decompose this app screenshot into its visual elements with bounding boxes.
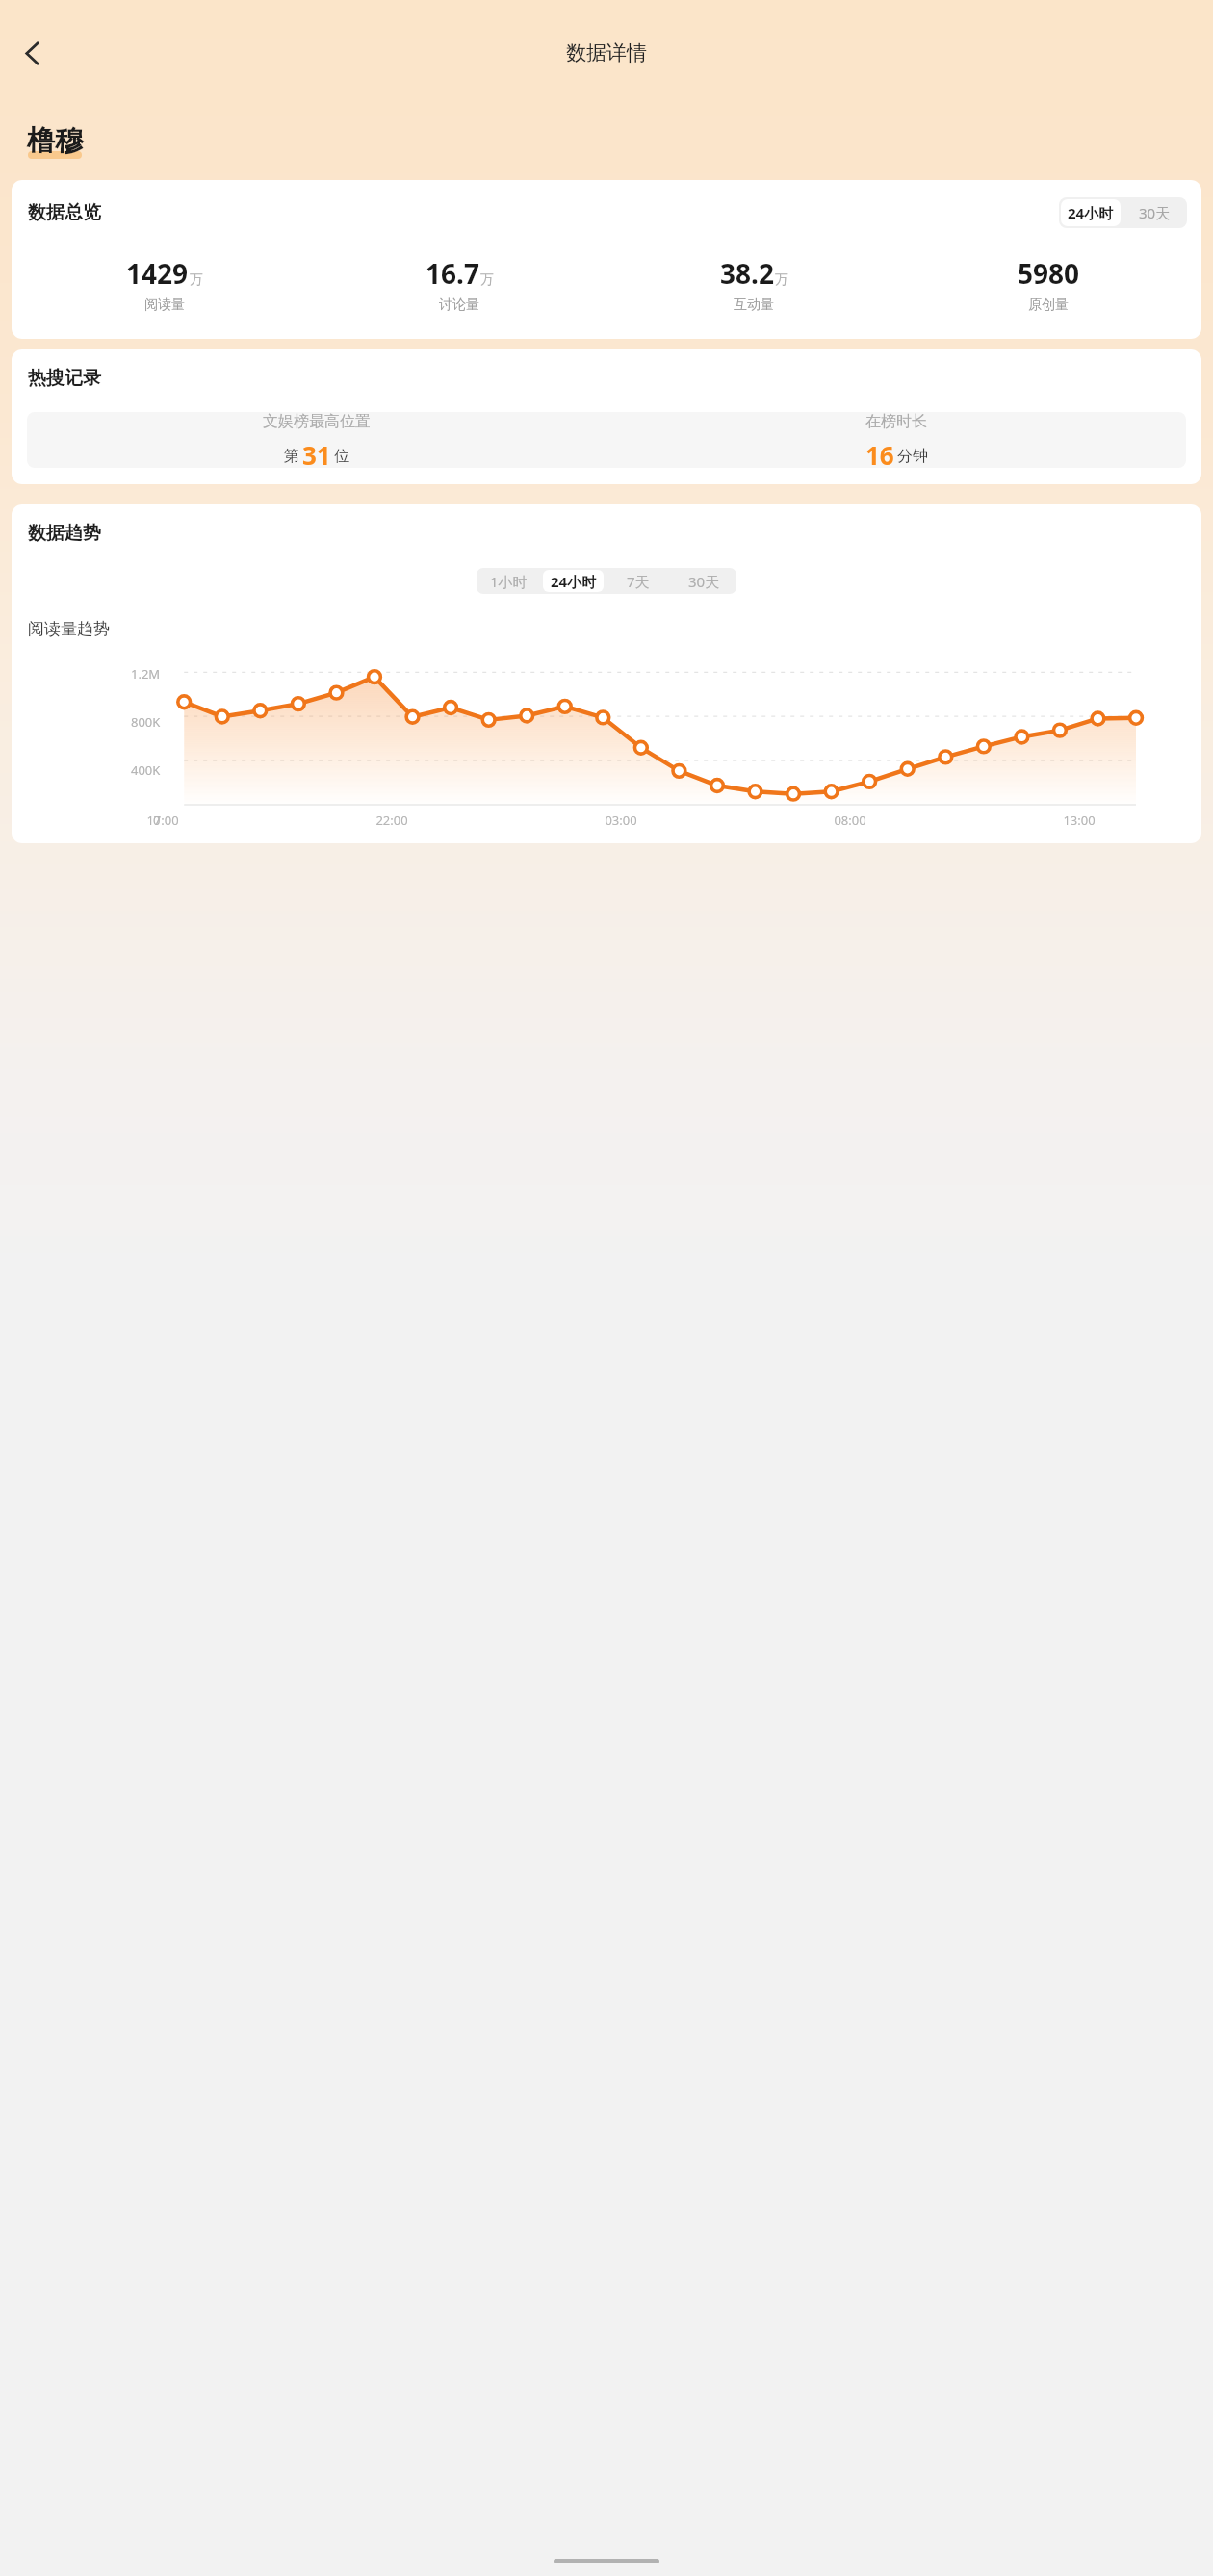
staticText: 24小时 [1068, 203, 1114, 222]
staticText: 数据总览 [28, 201, 101, 224]
button[interactable]: Back [5, 26, 59, 80]
staticText: 阅读量 [144, 296, 185, 314]
staticText: 互动量 [734, 296, 774, 314]
button[interactable]: 7天 [606, 568, 671, 594]
staticText: 13:00 [965, 811, 1194, 829]
staticText: 24小时 [551, 572, 597, 591]
staticText: 16 [865, 438, 894, 468]
staticText: 文娱榜最高位置 [263, 412, 371, 431]
staticText: 热搜记录 [28, 367, 101, 390]
staticText: 位 [334, 447, 349, 466]
staticText: 1小时 [490, 572, 528, 591]
staticText: 万 [480, 271, 494, 289]
staticText: 30天 [1139, 203, 1171, 222]
staticText: 分钟 [897, 447, 928, 466]
staticText: 阅读量趋势 [28, 619, 110, 639]
staticText: 30天 [688, 572, 720, 591]
staticText: 31 [302, 438, 331, 468]
staticText: 5980 [1018, 255, 1080, 292]
staticText: 0 [153, 811, 161, 829]
staticText: 数据趋势 [28, 522, 101, 545]
staticText: 在榜时长 [865, 412, 927, 431]
staticText: 400K [131, 761, 161, 779]
staticText: 1.2M [131, 665, 161, 683]
staticText: 讨论量 [439, 296, 479, 314]
staticText: 08:00 [736, 811, 965, 829]
staticText: 万 [190, 271, 203, 289]
staticText: 第 [284, 447, 299, 466]
staticText: 16.7 [426, 255, 479, 292]
staticText: 1429 [126, 255, 189, 292]
button[interactable]: 24小时 [1061, 199, 1121, 226]
button[interactable]: 30天 [1123, 197, 1187, 228]
staticText: 03:00 [506, 811, 736, 829]
staticText: 7天 [627, 572, 650, 591]
staticText: 原创量 [1028, 296, 1069, 314]
staticText: 38.2 [720, 255, 774, 292]
staticText: 22:00 [277, 811, 506, 829]
button[interactable]: 24小时 [543, 570, 604, 592]
staticText: 数据详情 [566, 40, 647, 65]
staticText: 橹穆 [27, 123, 83, 159]
staticText: 17:00 [48, 811, 277, 829]
staticText: 800K [131, 713, 161, 731]
button[interactable]: 1小时 [477, 568, 541, 594]
staticText: 万 [775, 271, 788, 289]
button[interactable]: 30天 [671, 568, 736, 594]
